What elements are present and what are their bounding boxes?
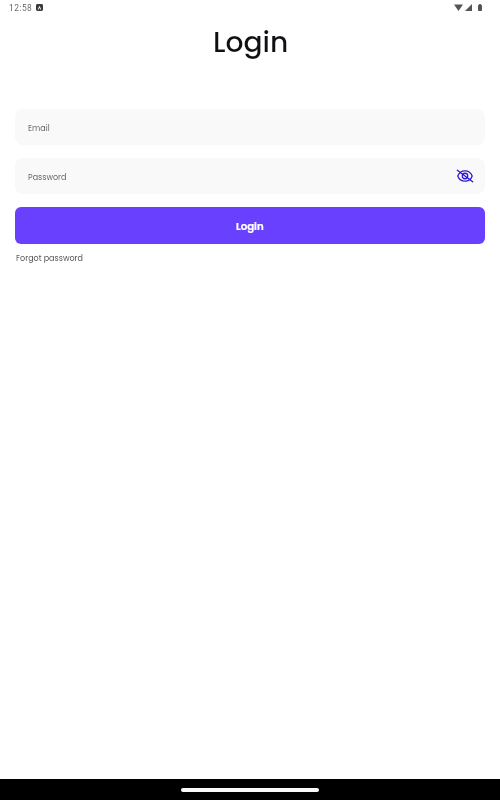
button[interactable]: Forgot password	[16, 252, 83, 265]
staticText: Email	[28, 123, 50, 134]
button[interactable]: Login	[15, 207, 485, 244]
staticText: Password	[28, 172, 67, 183]
staticText: Login	[213, 22, 289, 61]
staticText: Login	[236, 219, 264, 233]
button[interactable]: Password	[15, 158, 485, 194]
staticText: 12:58	[9, 3, 33, 13]
button[interactable]: Hide password	[453, 164, 477, 188]
button[interactable]: Email	[15, 109, 485, 145]
staticText: Forgot password	[16, 253, 83, 264]
